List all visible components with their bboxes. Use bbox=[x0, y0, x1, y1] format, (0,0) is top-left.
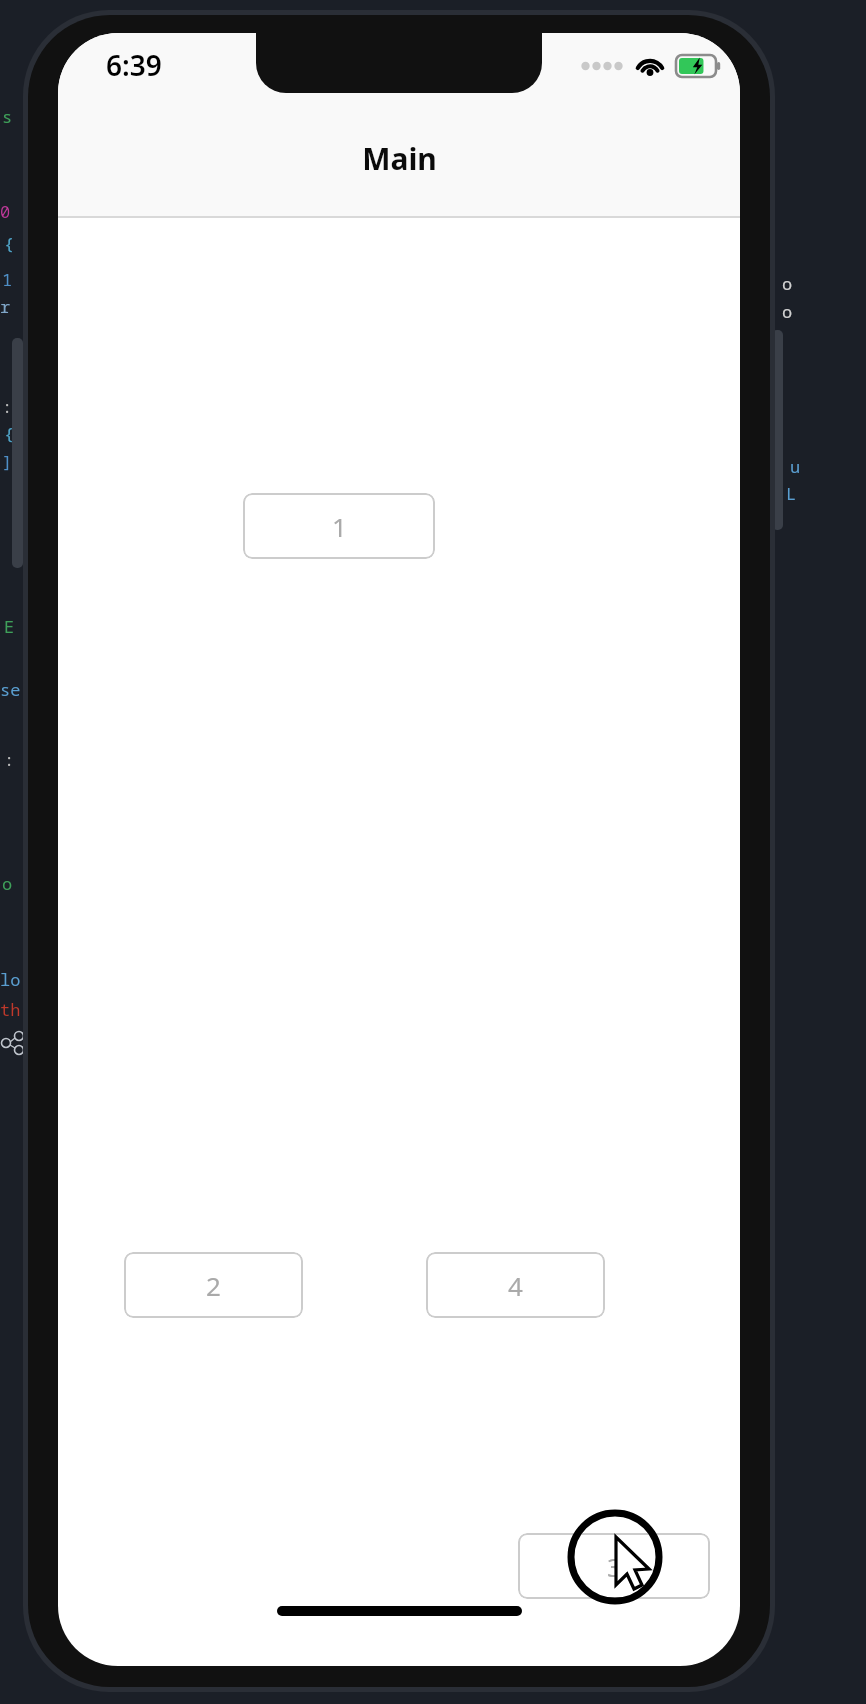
staticText: 6:39 bbox=[106, 46, 162, 84]
staticText: th bbox=[0, 998, 21, 1021]
staticText: { bbox=[4, 232, 15, 255]
staticText: 4 bbox=[508, 1268, 523, 1303]
staticText: o bbox=[2, 872, 13, 895]
staticText: 1 bbox=[332, 509, 347, 544]
button[interactable]: 3 bbox=[518, 1533, 710, 1599]
staticText: o bbox=[782, 300, 793, 323]
staticText: ] bbox=[2, 450, 13, 473]
staticText: { bbox=[4, 422, 15, 445]
button[interactable]: 1 bbox=[243, 493, 435, 559]
staticText: o bbox=[782, 272, 793, 295]
staticText: s bbox=[2, 105, 13, 128]
staticText: u bbox=[790, 455, 801, 478]
staticText: 3 bbox=[607, 1549, 622, 1584]
staticText: se bbox=[0, 678, 21, 701]
staticText: 0 bbox=[0, 200, 11, 223]
staticText: 1 bbox=[2, 268, 13, 291]
staticText: Main bbox=[362, 138, 437, 179]
staticText: r bbox=[0, 295, 11, 318]
button[interactable]: 2 bbox=[124, 1252, 303, 1318]
staticText: lo bbox=[0, 968, 21, 991]
button[interactable]: 4 bbox=[426, 1252, 605, 1318]
staticText: E bbox=[4, 615, 15, 638]
staticText: : bbox=[2, 395, 13, 418]
staticText: L bbox=[786, 482, 797, 505]
staticText: 2 bbox=[206, 1268, 221, 1303]
staticText: : bbox=[4, 748, 15, 771]
